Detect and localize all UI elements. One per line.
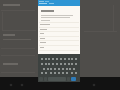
button[interactable] bbox=[38, 22, 80, 27]
button[interactable] bbox=[38, 40, 80, 45]
button[interactable]: Back bbox=[9, 83, 13, 87]
button[interactable]: Enter bbox=[71, 77, 76, 81]
button[interactable]: Home bbox=[20, 83, 24, 87]
button[interactable] bbox=[38, 0, 80, 6]
button[interactable] bbox=[38, 45, 80, 50]
button[interactable] bbox=[38, 27, 80, 32]
button[interactable] bbox=[38, 36, 80, 41]
button[interactable]: Recents bbox=[92, 83, 96, 87]
button[interactable] bbox=[38, 31, 80, 36]
